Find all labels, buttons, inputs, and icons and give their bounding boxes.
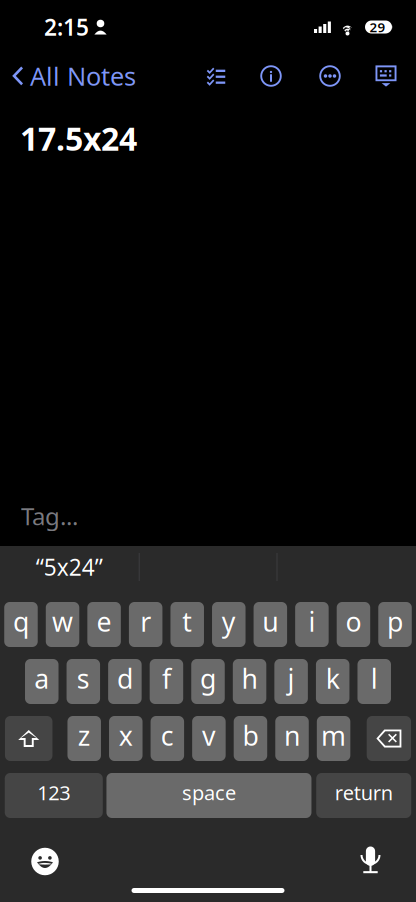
button[interactable]: Emoji bbox=[22, 839, 67, 884]
button[interactable]: o bbox=[337, 602, 370, 647]
button[interactable]: m bbox=[317, 716, 350, 761]
staticText: 123 bbox=[37, 779, 70, 806]
staticText: o bbox=[345, 604, 361, 639]
staticText: 17.5x24 bbox=[20, 117, 137, 159]
button[interactable]: Checklist bbox=[194, 54, 238, 98]
staticText: d bbox=[117, 661, 133, 696]
button[interactable]: return bbox=[316, 773, 411, 818]
staticText: j bbox=[288, 661, 295, 696]
button[interactable]: k bbox=[316, 659, 349, 704]
staticText: b bbox=[242, 718, 258, 753]
button[interactable]: Dictate bbox=[348, 839, 393, 884]
staticText: r bbox=[140, 604, 151, 639]
staticText: u bbox=[262, 604, 278, 639]
staticText: space bbox=[182, 779, 236, 806]
button[interactable]: j bbox=[274, 659, 308, 704]
staticText: z bbox=[78, 718, 91, 753]
button[interactable]: 123 bbox=[5, 773, 103, 818]
button[interactable]: r bbox=[129, 602, 162, 647]
button[interactable]: All Notes bbox=[0, 54, 144, 98]
staticText: c bbox=[161, 718, 174, 753]
staticText: w bbox=[52, 604, 73, 639]
button[interactable]: h bbox=[233, 659, 266, 704]
staticText: Tag... bbox=[21, 500, 78, 532]
button[interactable]: d bbox=[108, 659, 142, 704]
staticText: p bbox=[387, 604, 403, 639]
button[interactable]: e bbox=[87, 602, 121, 647]
button[interactable]: c bbox=[151, 716, 184, 761]
button[interactable]: q bbox=[4, 602, 38, 647]
staticText: return bbox=[335, 779, 393, 806]
staticText: q bbox=[13, 604, 29, 639]
staticText: All Notes bbox=[30, 59, 136, 93]
staticText: k bbox=[326, 661, 340, 696]
button[interactable]: Shift bbox=[5, 716, 52, 761]
button[interactable]: More bbox=[308, 54, 352, 98]
staticText: t bbox=[182, 604, 192, 639]
staticText: e bbox=[97, 604, 112, 639]
button[interactable]: g bbox=[191, 659, 225, 704]
button[interactable]: f bbox=[150, 659, 183, 704]
staticText: f bbox=[162, 661, 171, 696]
staticText: 2:15 bbox=[44, 12, 89, 42]
button[interactable]: w bbox=[46, 602, 79, 647]
button[interactable]: y bbox=[212, 602, 245, 647]
staticText: y bbox=[222, 604, 236, 639]
button[interactable]: Delete bbox=[367, 716, 411, 761]
button[interactable]: u bbox=[254, 602, 287, 647]
button[interactable]: p bbox=[378, 602, 412, 647]
button[interactable]: n bbox=[275, 716, 309, 761]
staticText: “5x24” bbox=[36, 552, 103, 582]
button[interactable]: b bbox=[234, 716, 267, 761]
button[interactable]: i bbox=[295, 602, 329, 647]
button[interactable]: space bbox=[106, 773, 311, 818]
staticText: v bbox=[202, 718, 216, 753]
staticText: g bbox=[200, 661, 216, 696]
staticText: m bbox=[321, 718, 346, 753]
button[interactable]: a bbox=[25, 659, 58, 704]
button[interactable]: l bbox=[357, 659, 391, 704]
button[interactable]: v bbox=[192, 716, 226, 761]
staticText: l bbox=[371, 661, 378, 696]
button[interactable]: “5x24” bbox=[0, 546, 139, 588]
staticText: s bbox=[77, 661, 90, 696]
staticText: h bbox=[242, 661, 258, 696]
button[interactable]: t bbox=[170, 602, 204, 647]
staticText: i bbox=[308, 604, 315, 639]
button[interactable]: s bbox=[67, 659, 100, 704]
button[interactable]: Hide Keyboard bbox=[364, 54, 408, 98]
staticText: x bbox=[119, 718, 133, 753]
button[interactable]: Tag... bbox=[0, 498, 92, 534]
staticText: n bbox=[284, 718, 300, 753]
staticText: a bbox=[34, 661, 49, 696]
staticText: 29 bbox=[369, 18, 385, 36]
button[interactable]: z bbox=[67, 716, 101, 761]
button[interactable]: Info bbox=[249, 54, 293, 98]
button[interactable]: x bbox=[109, 716, 142, 761]
